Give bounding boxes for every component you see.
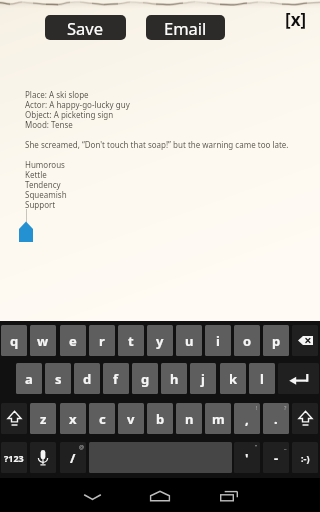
staticText: x bbox=[69, 410, 77, 428]
button[interactable]: m bbox=[205, 403, 231, 434]
staticText: Place: A ski slope Actor: A happy-go-luc… bbox=[25, 89, 289, 210]
button[interactable]: y bbox=[147, 325, 173, 356]
staticText: z bbox=[40, 410, 47, 428]
button[interactable]: i bbox=[205, 325, 231, 356]
staticText: l bbox=[260, 370, 264, 388]
button[interactable]: _ bbox=[263, 442, 289, 473]
button[interactable]: Backspace bbox=[292, 325, 318, 356]
button[interactable]: Hide keyboard bbox=[61, 482, 124, 508]
button[interactable]: o bbox=[234, 325, 260, 356]
button[interactable]: l bbox=[249, 363, 275, 394]
button[interactable]: h bbox=[161, 363, 187, 394]
button[interactable]: n bbox=[176, 403, 202, 434]
staticText: g bbox=[141, 370, 150, 388]
button[interactable]: @ bbox=[60, 442, 86, 473]
staticText: n bbox=[185, 410, 194, 428]
button[interactable]: b bbox=[147, 403, 173, 434]
button[interactable]: Home bbox=[129, 481, 191, 507]
staticText: v bbox=[127, 410, 135, 428]
button[interactable]: r bbox=[89, 325, 115, 356]
staticText: i bbox=[216, 332, 220, 350]
staticText: j bbox=[201, 370, 205, 388]
button[interactable]: s bbox=[45, 363, 71, 394]
staticText: q bbox=[10, 332, 19, 350]
button[interactable]: Voice input bbox=[30, 442, 56, 473]
staticText: ' bbox=[245, 449, 249, 467]
button[interactable]: Close bbox=[280, 6, 311, 33]
staticText: :-) bbox=[301, 452, 310, 464]
staticText: o bbox=[243, 332, 252, 350]
button[interactable]: f bbox=[103, 363, 129, 394]
staticText: u bbox=[185, 332, 194, 350]
button[interactable]: " bbox=[234, 442, 260, 473]
button[interactable]: Emoji bbox=[292, 442, 318, 473]
staticText: " bbox=[255, 443, 258, 450]
button[interactable]: k bbox=[220, 363, 246, 394]
button[interactable]: Email bbox=[146, 15, 225, 40]
staticText: Email bbox=[164, 17, 207, 39]
button[interactable]: c bbox=[89, 403, 115, 434]
button[interactable]: d bbox=[74, 363, 100, 394]
staticText: ?123 bbox=[4, 452, 24, 464]
button[interactable]: x bbox=[60, 403, 86, 434]
staticText: d bbox=[83, 370, 92, 388]
staticText: - bbox=[274, 449, 279, 467]
button[interactable]: Shift bbox=[1, 403, 27, 434]
button[interactable]: Save bbox=[45, 15, 126, 40]
staticText: k bbox=[229, 370, 238, 388]
staticText: e bbox=[69, 332, 77, 350]
staticText: m bbox=[212, 410, 225, 428]
button[interactable]: Enter bbox=[278, 363, 319, 394]
staticText: w bbox=[37, 332, 49, 350]
staticText: b bbox=[156, 410, 165, 428]
staticText: ? bbox=[284, 404, 287, 411]
button[interactable]: a bbox=[16, 363, 42, 394]
staticText: , bbox=[245, 410, 249, 428]
staticText: _ bbox=[284, 443, 287, 450]
staticText: / bbox=[70, 449, 76, 467]
button[interactable]: Shift bbox=[292, 403, 318, 434]
button[interactable]: g bbox=[132, 363, 158, 394]
button[interactable]: ! bbox=[234, 403, 260, 434]
staticText: Save bbox=[67, 17, 104, 39]
staticText: h bbox=[170, 370, 179, 388]
button[interactable]: ? bbox=[263, 403, 289, 434]
button[interactable]: p bbox=[263, 325, 289, 356]
button[interactable]: v bbox=[118, 403, 144, 434]
staticText: @ bbox=[79, 443, 84, 450]
button[interactable]: j bbox=[190, 363, 216, 394]
staticText: t bbox=[128, 332, 134, 350]
button[interactable]: u bbox=[176, 325, 202, 356]
staticText: f bbox=[113, 370, 119, 388]
staticText: s bbox=[55, 370, 62, 388]
button[interactable]: t bbox=[118, 325, 144, 356]
staticText: c bbox=[99, 410, 106, 428]
staticText: ! bbox=[256, 404, 258, 411]
button[interactable]: ?123 bbox=[1, 442, 27, 473]
staticText: r bbox=[99, 332, 105, 350]
staticText: [x] bbox=[285, 8, 307, 31]
button[interactable]: q bbox=[1, 325, 27, 356]
staticText: y bbox=[156, 332, 164, 350]
button[interactable]: e bbox=[60, 325, 86, 356]
staticText: . bbox=[274, 410, 278, 428]
button[interactable]: w bbox=[30, 325, 56, 356]
staticText: a bbox=[25, 370, 33, 388]
button[interactable]: Recents bbox=[198, 481, 260, 507]
staticText: p bbox=[272, 332, 281, 350]
button[interactable]: z bbox=[30, 403, 56, 434]
